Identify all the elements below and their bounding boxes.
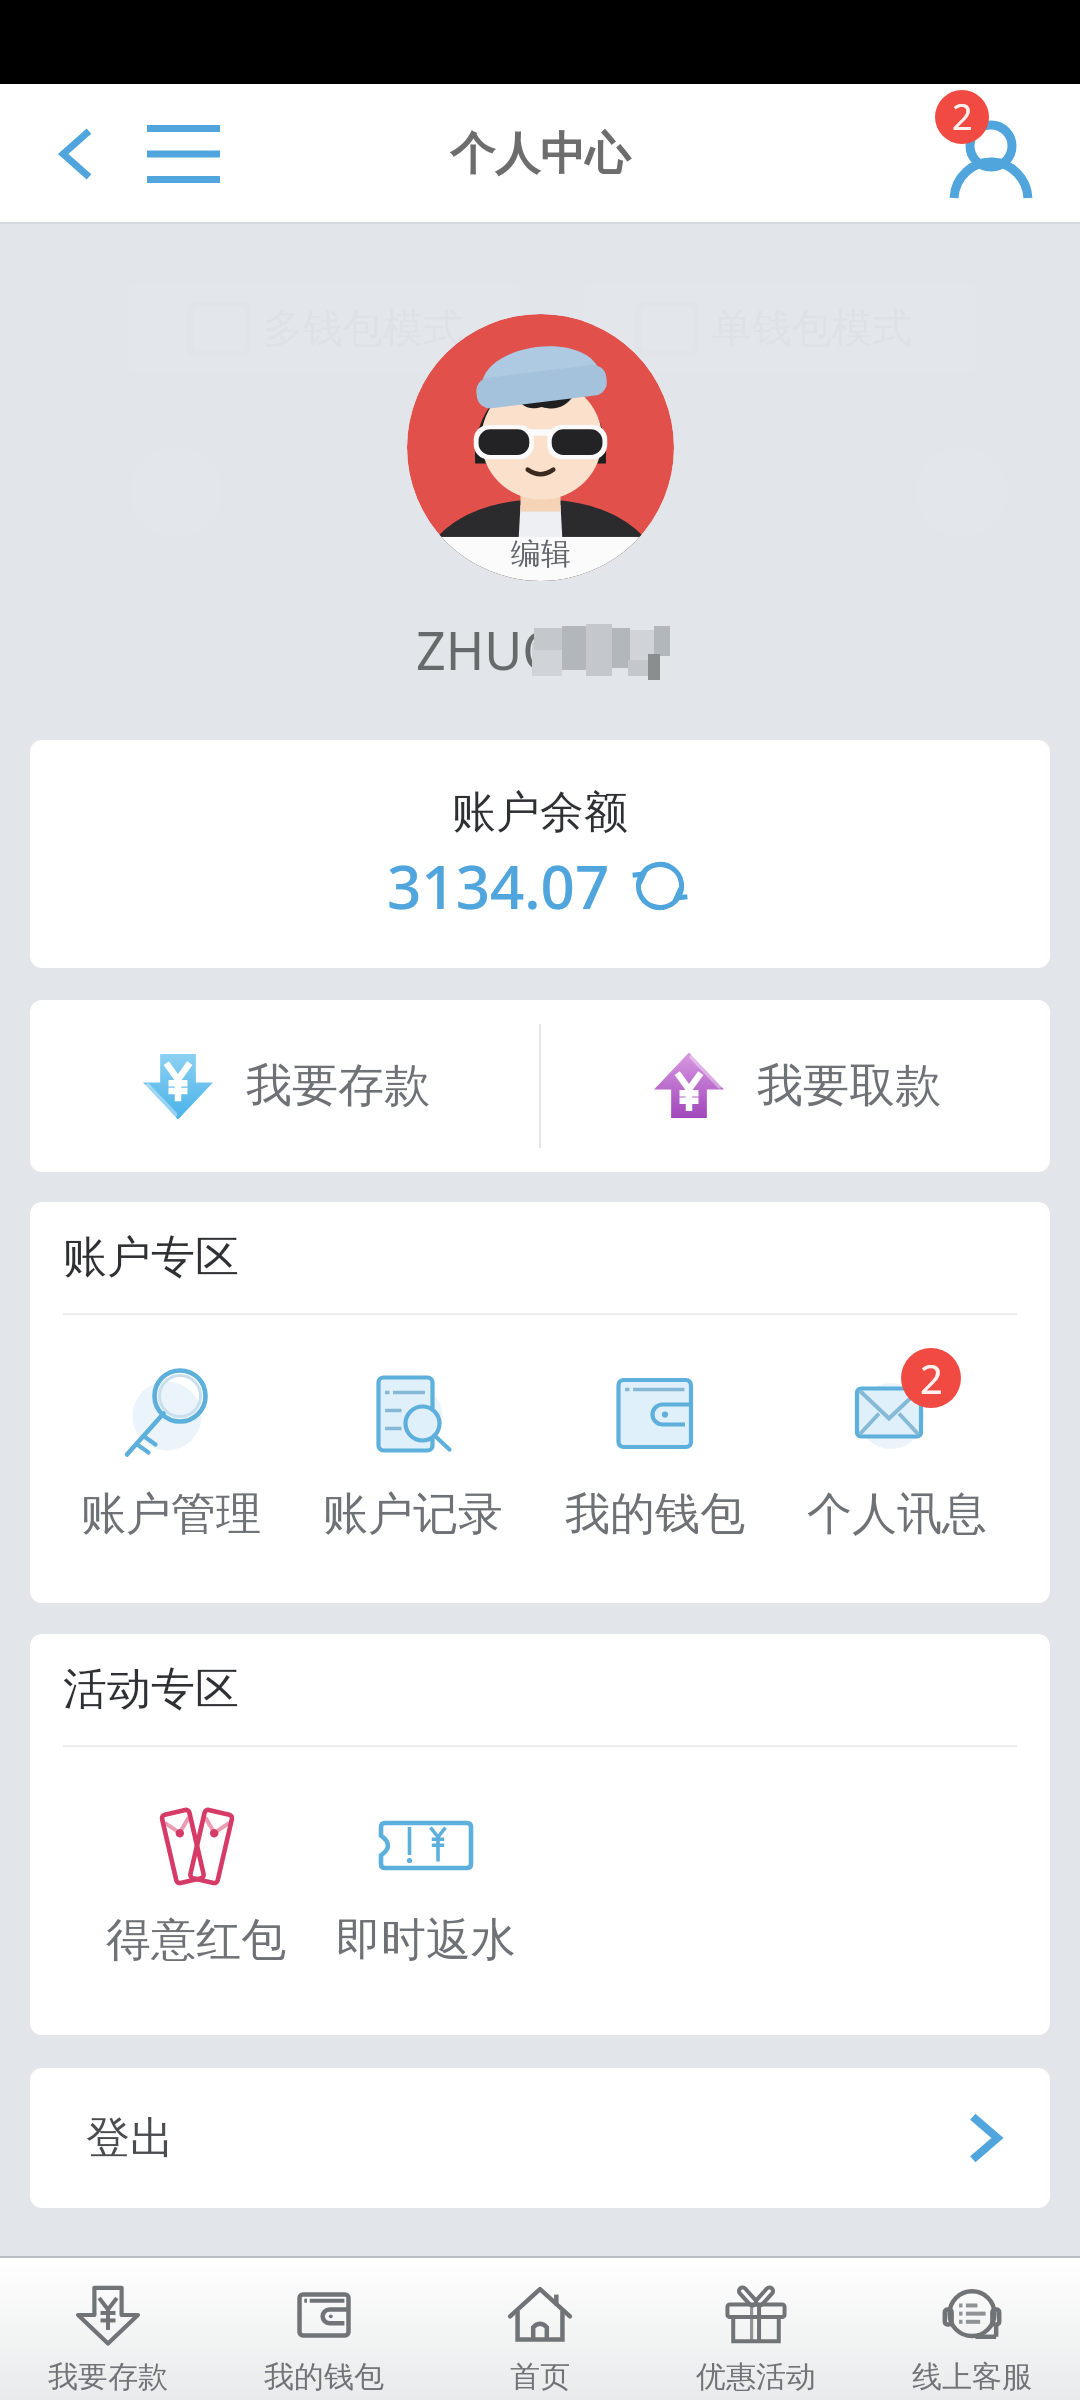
staticText: 活动专区 [63,1662,239,1717]
staticText: 账户余额 [452,785,628,840]
staticText: 即时返水 [336,1912,516,1969]
button[interactable]: 我的钱包 [216,2258,432,2400]
staticText: 个人讯息 [807,1486,987,1543]
button[interactable]: 即时返水 [311,1782,541,1969]
staticText: 我要存款 [48,2358,168,2396]
button[interactable]: 账户管理 [50,1356,292,1543]
button[interactable]: 登出 [30,2068,1050,2208]
staticText: 得意红包 [106,1912,286,1969]
button[interactable]: Back [34,111,120,197]
button[interactable]: Menu [126,99,240,209]
staticText: 3134.07 [387,845,610,927]
staticText: 账户记录 [323,1486,503,1543]
staticText: 线上客服 [912,2358,1032,2396]
button[interactable]: 编辑 [407,314,674,581]
button[interactable]: 线上客服 [864,2258,1080,2400]
button[interactable]: 我要取款 [541,1000,1050,1172]
button[interactable]: 我的钱包 [534,1356,776,1543]
button[interactable]: 我要存款 [0,2258,216,2400]
button[interactable]: 优惠活动 [648,2258,864,2400]
staticText: 首页 [510,2358,570,2396]
button[interactable]: Account [926,89,1056,219]
staticText: 个人中心 [450,126,630,183]
staticText: 我要取款 [757,1057,941,1115]
staticText: 优惠活动 [696,2358,816,2396]
button[interactable]: Refresh balance [627,853,693,919]
staticText: 账户管理 [81,1486,261,1543]
staticText: 登出 [86,2111,174,2166]
button[interactable]: 账户余额 [30,740,1050,968]
button[interactable]: 首页 [432,2258,648,2400]
staticText: 我的钱包 [264,2358,384,2396]
staticText: 多钱包模式 [263,303,463,353]
button[interactable]: 得意红包 [81,1782,311,1969]
staticText: 2 [952,92,973,141]
staticText: 2 [920,1351,943,1405]
button[interactable]: 账户记录 [292,1356,534,1543]
staticText: 我的钱包 [565,1486,745,1543]
staticText: 我要存款 [246,1057,430,1115]
staticText: ZHUO [416,614,563,685]
staticText: 账户专区 [63,1230,239,1285]
staticText: 编辑 [511,535,571,573]
button[interactable]: 2 [776,1356,1018,1543]
button[interactable]: 我要存款 [30,1000,539,1172]
